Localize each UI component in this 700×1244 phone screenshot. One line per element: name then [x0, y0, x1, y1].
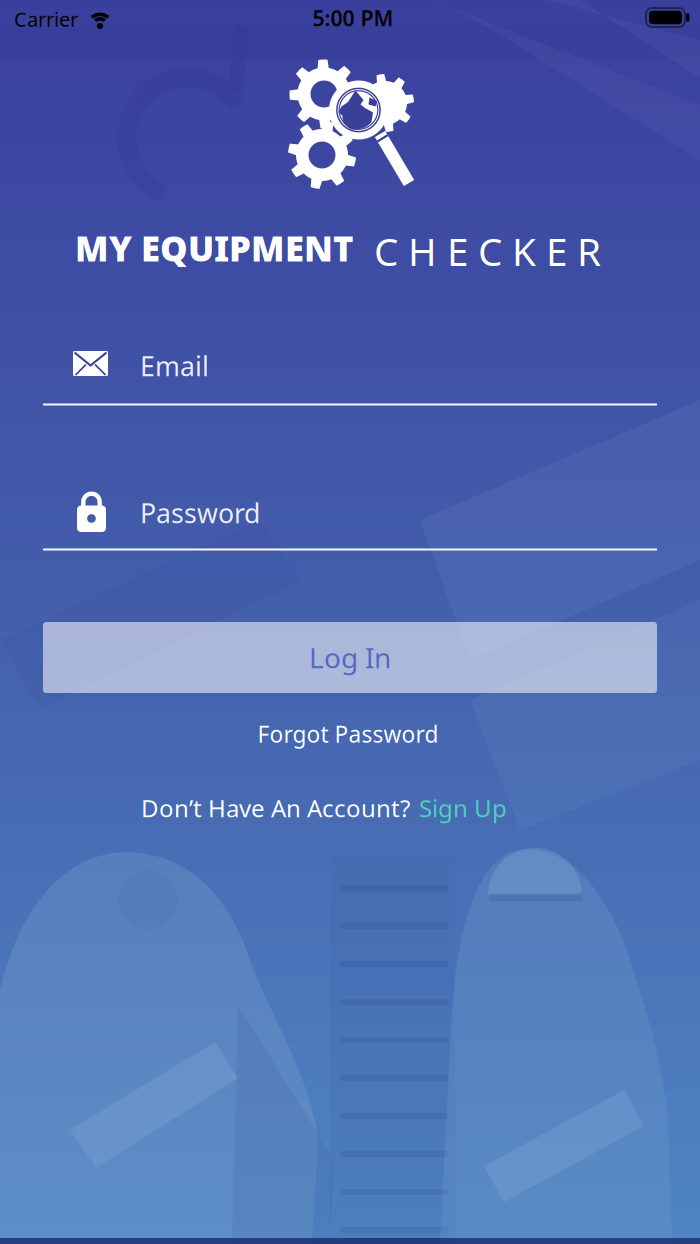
staticText: Forgot Password [257, 719, 438, 749]
button[interactable]: Forgot Password [257, 719, 438, 749]
staticText: Don’t Have An Account? [141, 792, 410, 824]
staticText: MY EQUIPMENT [75, 225, 353, 271]
button[interactable]: Sign Up [419, 792, 507, 824]
staticText: Password [140, 495, 260, 531]
staticText: C H E C K E R [374, 225, 601, 277]
staticText: Log In [309, 639, 391, 676]
button[interactable]: Email [43, 325, 657, 405]
button[interactable]: Log In [43, 622, 657, 693]
staticText: Sign Up [419, 792, 507, 824]
staticText: 5:00 PM [312, 4, 393, 32]
button[interactable]: Password [43, 478, 657, 558]
staticText: Email [140, 348, 209, 384]
staticText: Carrier [14, 6, 78, 32]
